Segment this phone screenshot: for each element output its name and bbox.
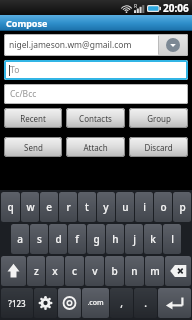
button[interactable]: t <box>78 192 96 222</box>
staticText: Group <box>147 113 171 124</box>
button[interactable]: To <box>4 60 188 80</box>
staticText: t <box>85 200 89 214</box>
staticText: .com <box>87 298 104 308</box>
button[interactable]: r <box>59 192 77 222</box>
button[interactable]: o <box>154 192 172 222</box>
button[interactable]: u <box>116 192 134 222</box>
button[interactable]: Enter <box>158 288 191 318</box>
staticText: Attach <box>83 142 108 153</box>
staticText: z <box>34 264 39 278</box>
staticText: a <box>17 232 23 246</box>
button[interactable]: w <box>21 192 39 222</box>
staticText: Cc/Bcc <box>10 88 37 100</box>
button[interactable]: d <box>49 224 67 254</box>
button[interactable]: Contacts <box>66 108 125 128</box>
staticText: . <box>144 296 147 310</box>
button[interactable]: .com <box>82 288 109 318</box>
button[interactable]: h <box>106 224 124 254</box>
button[interactable]: p <box>173 192 191 222</box>
button[interactable]: Send <box>4 137 62 157</box>
staticText: Contacts <box>79 113 112 124</box>
button[interactable]: q <box>1 192 20 222</box>
button[interactable]: i <box>135 192 153 222</box>
staticText: j <box>133 232 136 246</box>
staticText: d <box>55 232 62 246</box>
button[interactable]: j <box>125 224 143 254</box>
staticText: q <box>7 200 14 214</box>
button[interactable]: m <box>145 256 164 286</box>
button[interactable]: Attach <box>66 137 125 157</box>
staticText: Compose <box>6 17 48 29</box>
button[interactable]: s <box>30 224 48 254</box>
button[interactable]: v <box>85 256 104 286</box>
staticText: R <box>134 3 138 10</box>
button[interactable]: n <box>125 256 144 286</box>
button[interactable]: Settings <box>34 288 57 318</box>
staticText: Discard <box>144 142 173 153</box>
button[interactable]: k <box>144 224 162 254</box>
staticText: w <box>26 200 35 214</box>
button[interactable]: Discard <box>129 137 188 157</box>
staticText: x <box>52 264 58 278</box>
button[interactable]: Backspace <box>165 256 191 286</box>
button[interactable]: b <box>105 256 124 286</box>
staticText: s <box>37 232 42 246</box>
button[interactable]: Group <box>129 108 188 128</box>
button[interactable]: c <box>65 256 84 286</box>
button[interactable]: z <box>27 256 45 286</box>
staticText: c <box>72 264 77 278</box>
staticText: u <box>122 200 129 214</box>
button[interactable]: a <box>11 224 29 254</box>
staticText: 20:06 <box>163 1 189 15</box>
staticText: e <box>46 200 52 214</box>
button[interactable]: e <box>40 192 58 222</box>
staticText: p <box>179 200 186 214</box>
button[interactable]: . <box>134 288 157 318</box>
button[interactable]: l <box>163 224 181 254</box>
staticText: m <box>150 264 160 278</box>
button[interactable]: Shift <box>1 256 26 286</box>
staticText: r <box>66 200 71 214</box>
staticText: nigel.jameson.wm@gmail.com <box>9 39 158 51</box>
staticText: To <box>10 64 20 76</box>
staticText: Recent <box>20 113 46 124</box>
button[interactable]: g <box>87 224 105 254</box>
staticText: k <box>150 232 156 246</box>
staticText: l <box>171 232 174 246</box>
staticText: o <box>160 200 167 214</box>
staticText: f <box>75 232 79 246</box>
button[interactable]: x <box>46 256 64 286</box>
staticText: b <box>111 264 118 278</box>
staticText: Send <box>24 142 43 153</box>
button[interactable]: Cc/Bcc <box>4 84 188 104</box>
button[interactable]: , <box>110 288 133 318</box>
button[interactable]: At sign <box>58 288 81 318</box>
staticText: i <box>143 200 146 214</box>
staticText: y <box>103 200 109 214</box>
staticText: , <box>120 296 123 310</box>
staticText: v <box>92 264 98 278</box>
staticText: ?123 <box>8 298 26 309</box>
staticText: h <box>112 232 119 246</box>
button[interactable]: Recent <box>4 108 62 128</box>
staticText: g <box>93 232 100 246</box>
button[interactable]: y <box>97 192 115 222</box>
button[interactable]: nigel.jameson.wm@gmail.com <box>4 34 188 56</box>
button[interactable]: f <box>68 224 86 254</box>
button[interactable]: ?123 <box>1 288 33 318</box>
staticText: n <box>131 264 138 278</box>
